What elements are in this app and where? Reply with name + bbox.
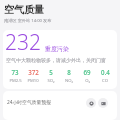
- button[interactable]: 73: [6, 68, 24, 84]
- staticText: PM2.5: [9, 78, 22, 84]
- staticText: NO₂: [65, 78, 73, 84]
- staticText: 5: [49, 68, 53, 76]
- staticText: 重度污染: [45, 45, 69, 53]
- staticText: 232: [5, 30, 41, 57]
- staticText: 空气质量: [4, 3, 44, 16]
- button[interactable]: Calendar: [98, 98, 108, 108]
- button[interactable]: 69: [78, 68, 96, 84]
- button[interactable]: 232: [3, 30, 117, 89]
- staticText: 0.4: [101, 68, 110, 76]
- button[interactable]: 372: [24, 68, 42, 84]
- staticText: 69: [83, 68, 91, 76]
- staticText: 南湖区 室外站 14:00 发布: [4, 18, 52, 24]
- button[interactable]: 8: [60, 68, 78, 84]
- staticText: 空气中大颗粒物较多，请减少外出，关闭门窗: [6, 57, 106, 63]
- button[interactable]: Refresh: [86, 98, 96, 108]
- staticText: PM10: [27, 78, 39, 84]
- staticText: O₃: [85, 78, 90, 84]
- button[interactable]: 5: [42, 68, 60, 84]
- staticText: 24小时空气质量预报: [7, 99, 51, 106]
- staticText: 8: [67, 68, 71, 76]
- staticText: CO: [102, 78, 108, 84]
- staticText: SO₂: [47, 78, 55, 84]
- button[interactable]: 0.4: [96, 68, 114, 84]
- staticText: 73: [11, 68, 19, 76]
- staticText: 372: [28, 68, 39, 76]
